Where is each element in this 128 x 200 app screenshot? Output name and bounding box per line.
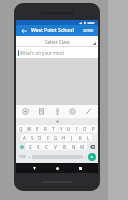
staticText: X [37, 144, 40, 150]
button[interactable]: Q [17, 125, 25, 132]
staticText: T [52, 126, 55, 132]
button[interactable]: B [60, 143, 69, 150]
staticText: A [23, 135, 26, 141]
button[interactable]: Camera [66, 105, 79, 118]
button[interactable]: Draw [82, 105, 95, 118]
button[interactable]: W [25, 125, 33, 132]
button[interactable]: Document [35, 105, 48, 118]
button[interactable]: ?123 [18, 152, 27, 161]
button[interactable]: R [41, 125, 49, 132]
staticText: I [76, 126, 78, 132]
button[interactable]: F [44, 134, 52, 141]
button[interactable]: Back [29, 163, 39, 173]
staticText: . [85, 153, 87, 160]
button[interactable]: C [42, 143, 51, 150]
staticText: G [54, 135, 58, 141]
staticText: West Point School [31, 27, 74, 34]
button[interactable]: Select Class [16, 36, 98, 47]
staticText: V [54, 144, 57, 150]
button[interactable]: Shift [17, 142, 26, 151]
staticText: Y [60, 126, 63, 132]
button[interactable]: Add attachment [19, 105, 32, 118]
button[interactable]: Home [52, 163, 62, 173]
staticText: J [71, 135, 73, 141]
staticText: S [31, 135, 34, 141]
button[interactable]: P [89, 125, 97, 132]
button[interactable]: Recents [75, 163, 85, 173]
button[interactable]: K [76, 134, 84, 141]
button[interactable]: G [52, 134, 60, 141]
staticText: R [44, 126, 47, 132]
button[interactable]: M [78, 143, 87, 150]
button[interactable]: Send [88, 153, 96, 161]
staticText: O [83, 126, 87, 132]
staticText: , [29, 153, 31, 160]
staticText: Select Class [45, 39, 70, 45]
button[interactable]: V [51, 143, 60, 150]
staticText: M [80, 144, 85, 150]
staticText: K [79, 135, 82, 141]
button[interactable]: O [81, 125, 89, 132]
button[interactable]: J [68, 134, 76, 141]
staticText: SEND [83, 28, 94, 33]
button[interactable]: N [69, 143, 78, 150]
staticText: L [87, 135, 90, 141]
button[interactable]: T [49, 125, 57, 132]
button[interactable]: Back [19, 26, 28, 35]
button[interactable]: H [60, 134, 68, 141]
button[interactable]: Y [57, 125, 65, 132]
staticText: U [67, 126, 71, 132]
staticText: H [62, 135, 66, 141]
button[interactable]: Z [26, 143, 34, 150]
staticText: W [27, 126, 32, 132]
staticText: B [63, 144, 66, 150]
button[interactable]: A [21, 134, 28, 141]
staticText: E [36, 126, 39, 132]
button[interactable]: L [84, 134, 92, 141]
button[interactable]: What's on your mind [16, 47, 98, 58]
button[interactable]: S [28, 134, 36, 141]
staticText: F [47, 135, 50, 141]
staticText: D [38, 135, 42, 141]
staticText: What's on your mind [20, 50, 64, 56]
staticText: N [72, 144, 76, 150]
button[interactable]: U [65, 125, 73, 132]
staticText: ?123 [19, 155, 26, 159]
staticText: C [45, 144, 48, 150]
button[interactable]: Backspace [87, 142, 97, 151]
staticText: P [92, 126, 95, 132]
button[interactable]: Period [83, 152, 88, 161]
button[interactable]: SEND [82, 28, 95, 33]
button[interactable]: X [34, 143, 42, 150]
button[interactable]: D [36, 134, 44, 141]
staticText: Q [19, 126, 23, 132]
button[interactable]: E [33, 125, 41, 132]
staticText: Z [29, 144, 32, 150]
button[interactable]: I [73, 125, 81, 132]
button[interactable]: Record audio [51, 105, 64, 118]
button[interactable]: Comma [27, 152, 32, 161]
